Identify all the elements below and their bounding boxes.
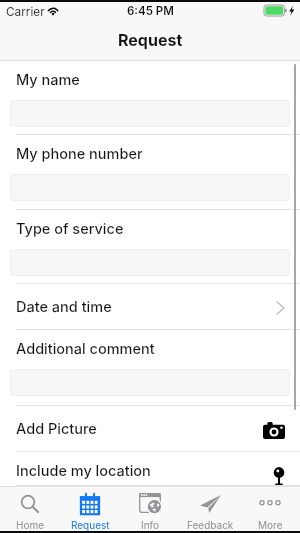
staticText: Date and time [16, 298, 112, 316]
button[interactable]: Info [120, 487, 180, 531]
staticText: Request [71, 519, 110, 531]
other: Add picture [263, 422, 285, 439]
button[interactable]: Additional comment [0, 330, 300, 406]
button[interactable]: My phone number [0, 135, 300, 210]
staticText: Additional comment [16, 340, 155, 358]
staticText: Carrier [6, 5, 45, 19]
staticText: 6:45 PM [127, 4, 174, 18]
button[interactable]: Type of service [0, 210, 300, 284]
staticText: Home [16, 519, 45, 531]
button[interactable]: Feedback [180, 487, 240, 531]
button[interactable]: Add Picture [0, 406, 300, 452]
button[interactable]: More [240, 487, 300, 531]
staticText: Info [141, 519, 159, 531]
staticText: Add Picture [16, 420, 97, 438]
staticText: More [258, 519, 283, 531]
staticText: Include my location [16, 462, 151, 480]
staticText: Feedback [187, 519, 234, 531]
staticText: My name [16, 71, 80, 89]
button[interactable]: Home [0, 487, 60, 531]
staticText: Request [118, 30, 183, 49]
button[interactable]: My name [0, 61, 300, 135]
button[interactable]: Request [60, 487, 120, 531]
button[interactable]: Date and time [0, 284, 300, 330]
staticText: Type of service [16, 220, 124, 238]
button[interactable]: Include my location [0, 452, 300, 486]
other: Include my location [273, 467, 285, 485]
staticText: My phone number [16, 145, 143, 163]
